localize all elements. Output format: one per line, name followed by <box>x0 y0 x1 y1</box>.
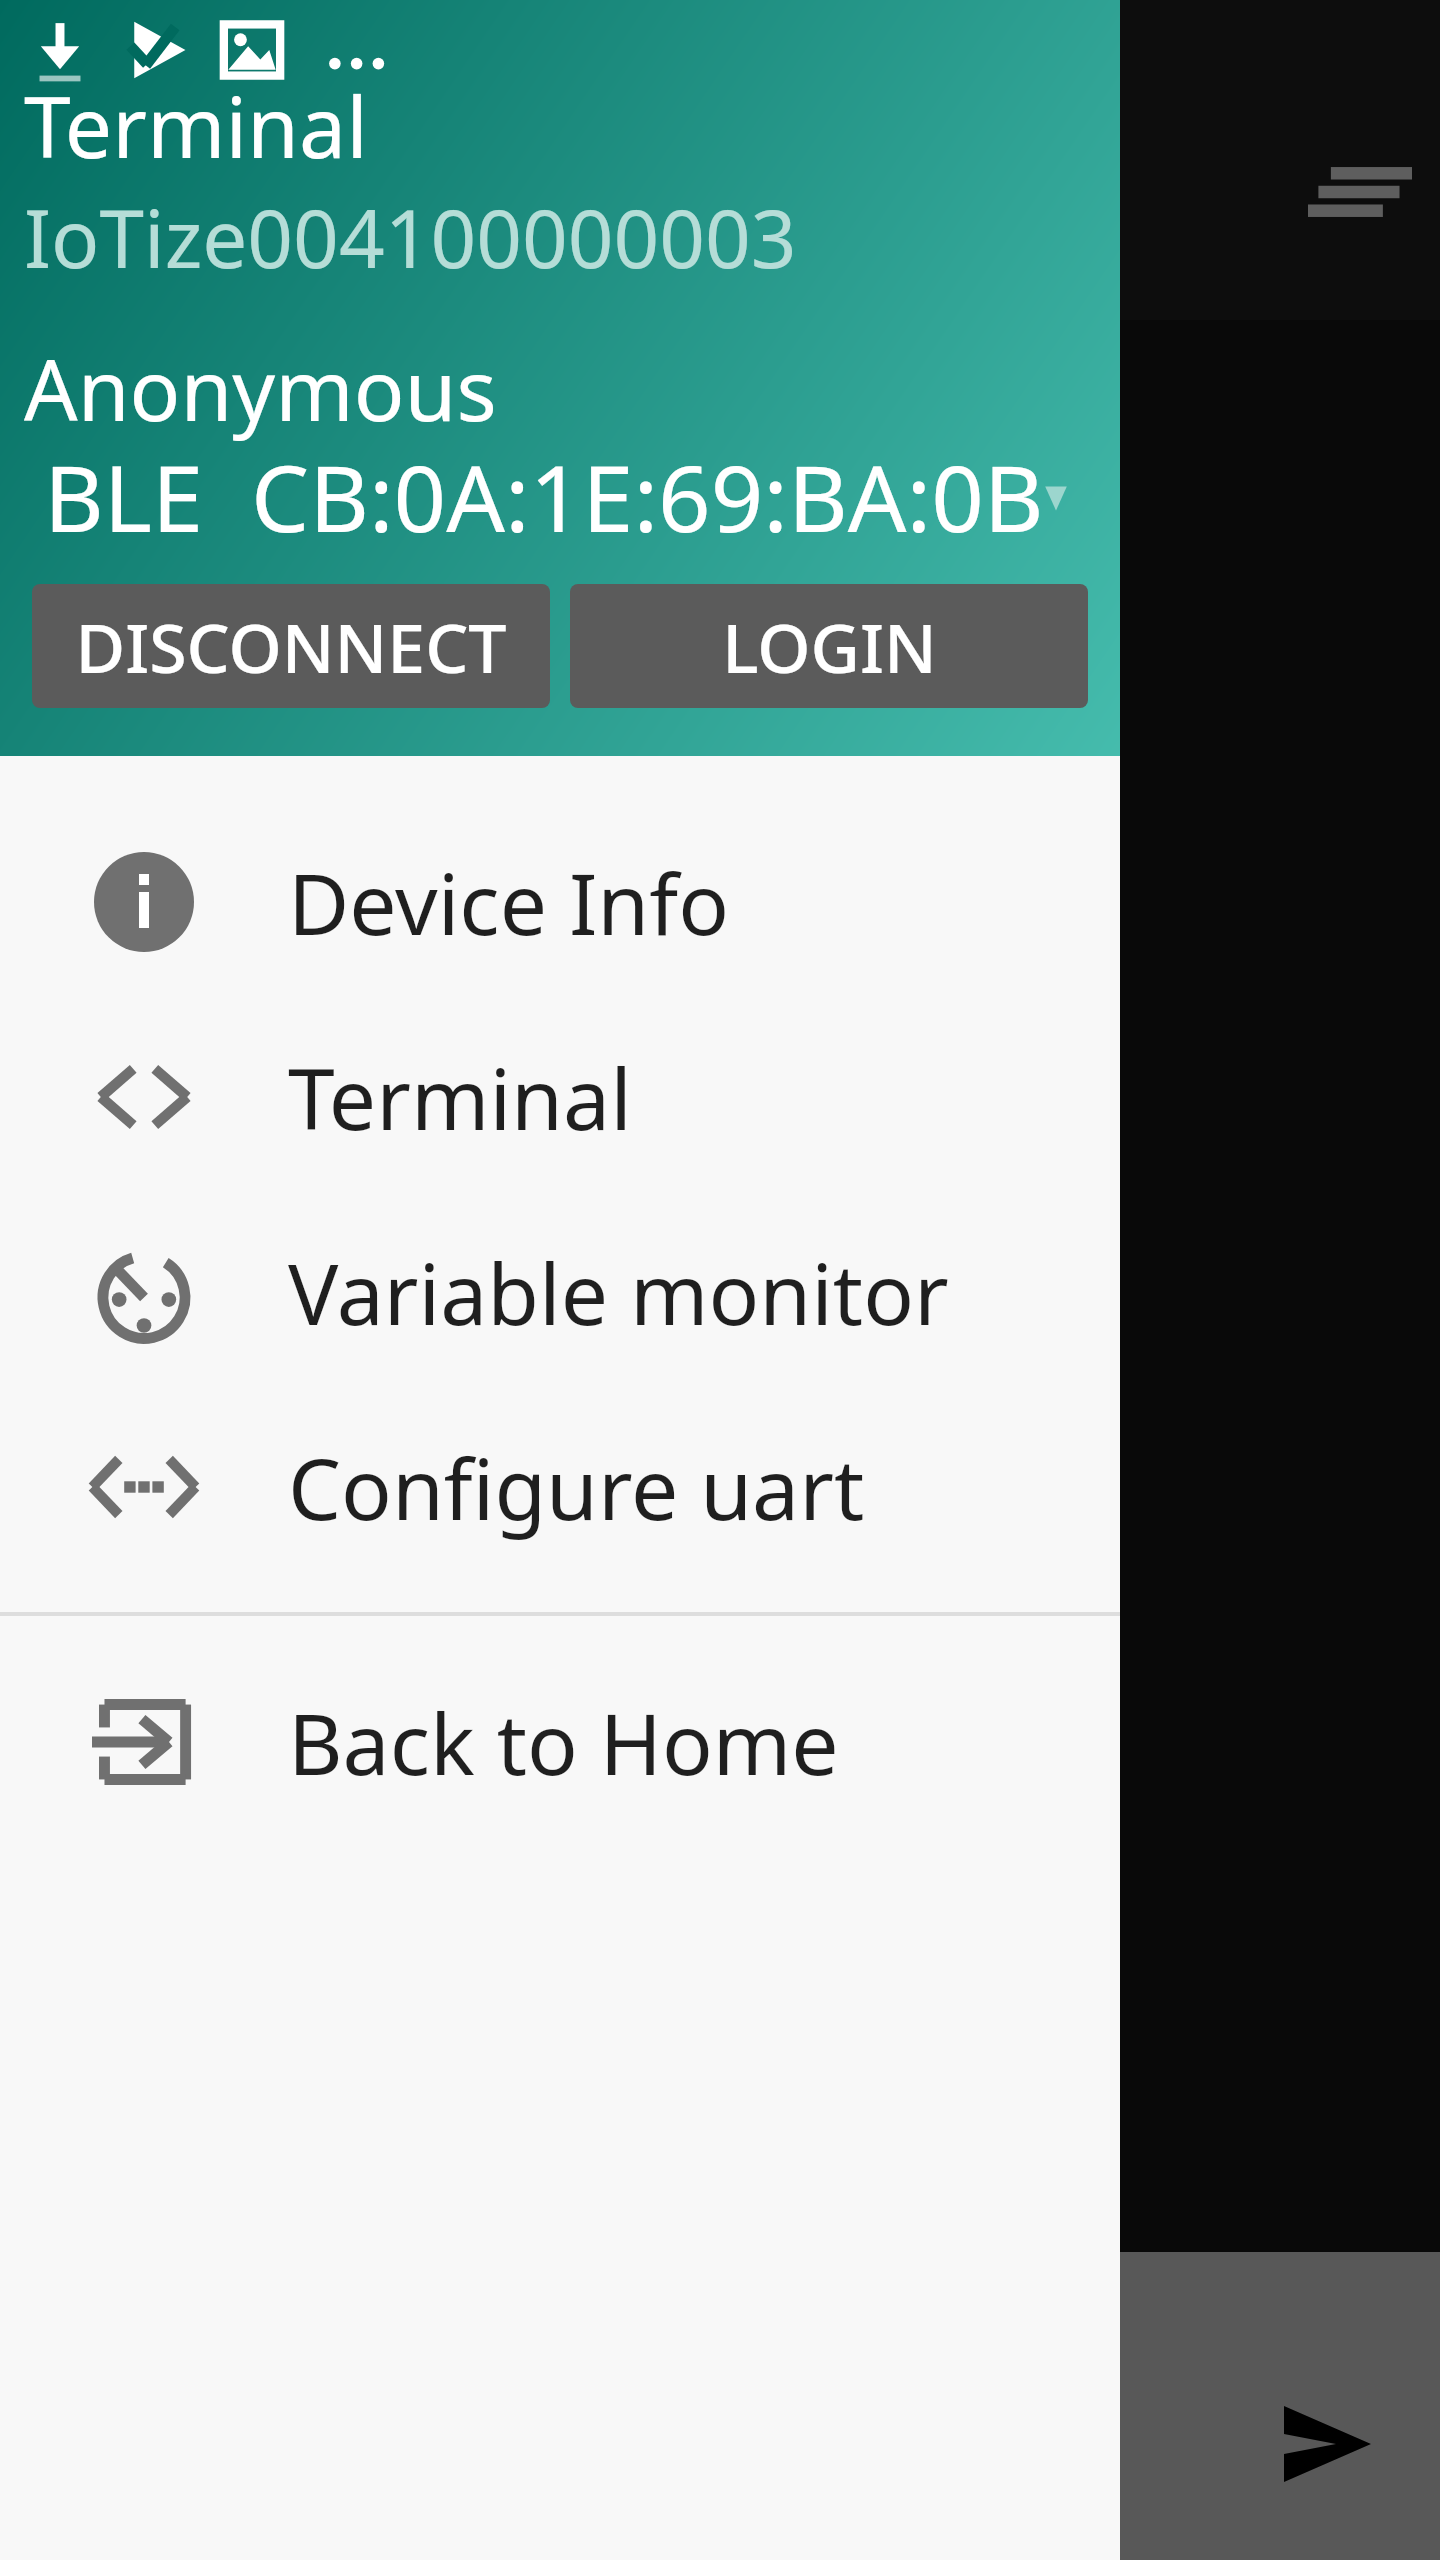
button[interactable]: LOGIN <box>570 584 1088 708</box>
staticText: Back to Home <box>288 1685 839 1799</box>
button[interactable]: Send <box>1244 2364 1404 2524</box>
button[interactable]: Terminal <box>0 999 1120 1194</box>
staticText: Device Info <box>288 845 730 959</box>
button[interactable]: Back to Home <box>0 1644 1120 1839</box>
button[interactable]: Variable monitor <box>0 1194 1120 1389</box>
staticText: Anonymous <box>24 331 497 445</box>
button[interactable]: Device Info <box>0 804 1120 999</box>
staticText: Configure uart <box>288 1430 865 1544</box>
staticText: Terminal <box>288 1040 632 1154</box>
button[interactable]: Sort <box>1276 108 1440 276</box>
button[interactable]: Configure uart <box>0 1389 1120 1584</box>
staticText: LOGIN <box>722 600 937 693</box>
staticText: IoTize004100000003 <box>24 182 797 291</box>
staticText: DISCONNECT <box>75 600 507 693</box>
staticText: Variable monitor <box>288 1235 949 1349</box>
button[interactable]: BLE CB:0A:1E:69:BA:0B <box>44 428 1068 564</box>
button[interactable]: DISCONNECT <box>32 584 550 708</box>
staticText: Terminal <box>24 68 368 182</box>
staticText: BLE CB:0A:1E:69:BA:0B <box>44 434 1044 559</box>
